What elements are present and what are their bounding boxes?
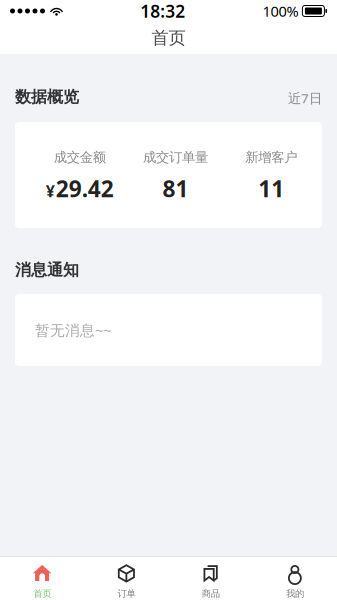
staticText: 81 <box>162 173 188 203</box>
staticText: 我的 <box>286 588 304 599</box>
staticText: 成交订单量 <box>143 149 208 165</box>
button[interactable]: 首页 <box>0 557 84 600</box>
staticText: 首页 <box>33 588 51 599</box>
staticText: 暂无消息~~ <box>35 320 111 340</box>
staticText: 数据概览 <box>15 87 79 107</box>
staticText: 商品 <box>202 588 220 599</box>
staticText: 成交金额 <box>54 149 106 165</box>
button[interactable]: 我的 <box>253 557 337 600</box>
staticText: 11 <box>258 173 284 203</box>
button[interactable]: 订单 <box>84 557 168 600</box>
staticText: 29.42 <box>56 173 114 203</box>
staticText: 订单 <box>117 588 135 599</box>
button[interactable]: 商品 <box>168 557 253 600</box>
staticText: 首页 <box>151 27 185 49</box>
staticText: 18:32 <box>140 0 185 22</box>
staticText: 100% <box>262 1 298 21</box>
staticText: 消息通知 <box>15 260 79 280</box>
staticText: ¥ <box>46 180 55 202</box>
staticText: 近7日 <box>288 89 322 107</box>
staticText: 新增客户 <box>245 149 297 165</box>
